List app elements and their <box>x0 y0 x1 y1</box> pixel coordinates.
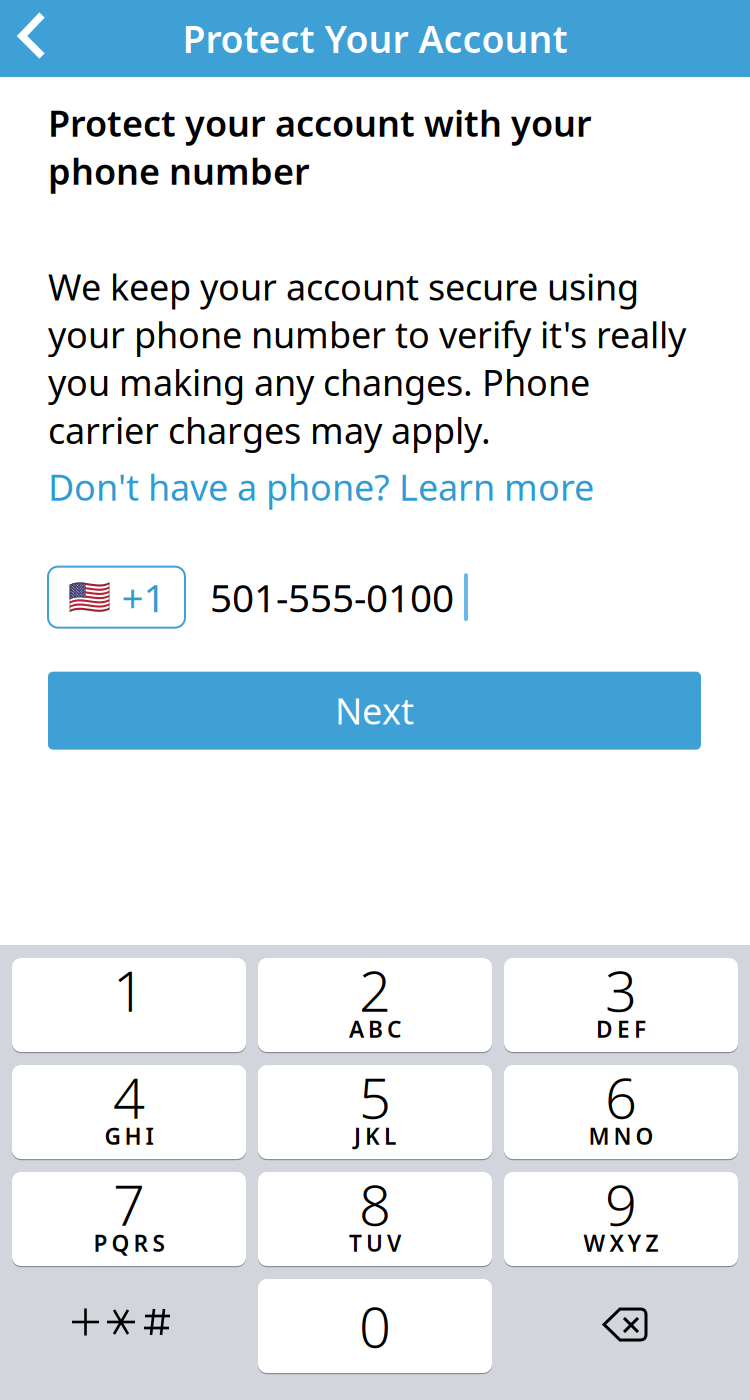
button[interactable]: 3 <box>504 958 738 1052</box>
staticText: 4 <box>113 1060 145 1134</box>
button[interactable]: 4 <box>12 1065 246 1159</box>
button[interactable]: 7 <box>12 1172 246 1266</box>
button[interactable]: 9 <box>504 1172 738 1266</box>
staticText: W X Y Z <box>583 1228 658 1258</box>
staticText: Next <box>335 687 414 734</box>
staticText: 5 <box>359 1060 391 1134</box>
button[interactable]: 6 <box>504 1065 738 1159</box>
button[interactable]: 0 <box>258 1279 492 1373</box>
button[interactable]: Next <box>48 672 701 750</box>
button[interactable]: Delete <box>504 1279 738 1373</box>
button[interactable]: 5 <box>258 1065 492 1159</box>
button[interactable]: 🇺🇸 <box>48 567 185 628</box>
staticText: D E F <box>596 1014 646 1044</box>
staticText: Protect your account with your phone num… <box>48 99 592 195</box>
button[interactable]: Don't have a phone? Learn more <box>48 463 594 511</box>
button[interactable]: 2 <box>258 958 492 1052</box>
staticText: P Q R S <box>93 1228 164 1258</box>
staticText: We keep your account secure using your p… <box>48 263 686 454</box>
staticText: 1 <box>113 953 145 1027</box>
staticText: A B C <box>349 1014 401 1044</box>
button[interactable]: Plus, star and pound symbols <box>12 1279 246 1373</box>
staticText: 9 <box>605 1167 637 1241</box>
button[interactable]: Back <box>0 6 60 71</box>
button[interactable]: 1 <box>12 958 246 1052</box>
staticText: T U V <box>349 1228 401 1258</box>
staticText: J K L <box>354 1121 396 1151</box>
staticText: 8 <box>359 1167 391 1241</box>
staticText: 0 <box>359 1289 391 1363</box>
staticText: G H I <box>104 1121 153 1151</box>
staticText: M N O <box>588 1121 653 1151</box>
staticText: Don't have a phone? Learn more <box>48 463 594 511</box>
staticText: 6 <box>605 1060 637 1134</box>
staticText: 501-555-0100 <box>210 571 454 623</box>
staticText: 3 <box>605 953 637 1027</box>
staticText: +1 <box>121 571 165 623</box>
staticText: 2 <box>359 953 391 1027</box>
staticText: 🇺🇸 <box>67 577 110 617</box>
staticText: 7 <box>113 1167 145 1241</box>
staticText: Protect Your Account <box>182 14 567 63</box>
button[interactable]: 8 <box>258 1172 492 1266</box>
